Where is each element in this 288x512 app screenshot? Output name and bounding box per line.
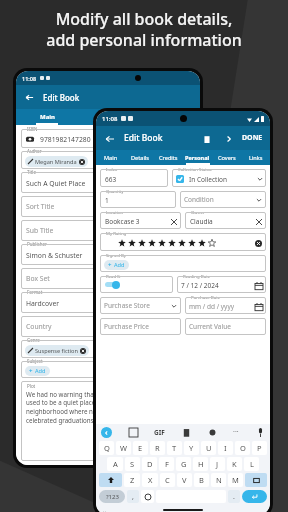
staticText: F	[165, 459, 169, 469]
button[interactable]: Title	[21, 172, 195, 193]
button[interactable]: V	[177, 473, 192, 487]
button[interactable]: W	[116, 441, 131, 455]
staticText: Index	[106, 166, 118, 172]
button[interactable]: Covers	[212, 150, 241, 165]
button[interactable]: Settings	[208, 428, 217, 437]
button[interactable]: Quantity	[100, 191, 176, 208]
button[interactable]: Location	[100, 212, 181, 229]
button[interactable]: Y	[184, 441, 199, 455]
staticText: Megan Miranda	[35, 158, 77, 166]
button[interactable]: My Rating	[100, 233, 266, 251]
button[interactable]: ⌄	[102, 507, 108, 512]
button[interactable]: S	[125, 457, 140, 471]
staticText: 9781982147280	[40, 135, 91, 144]
button[interactable]: D	[142, 457, 157, 471]
button[interactable]: Subject	[21, 361, 195, 378]
button[interactable]: Sub Title	[21, 220, 195, 241]
button[interactable]: O	[235, 441, 250, 455]
staticText: 1	[105, 196, 109, 205]
button[interactable]: ,	[127, 490, 139, 503]
staticText: S	[130, 459, 135, 469]
button[interactable]: Q	[99, 441, 114, 455]
button[interactable]: Delete	[200, 132, 213, 145]
button[interactable]: Format	[21, 292, 195, 313]
button[interactable]: .	[228, 490, 240, 503]
staticText: Box Set	[26, 274, 50, 283]
button[interactable]: Suspense fiction	[28, 345, 86, 356]
button[interactable]: Shift	[99, 473, 122, 487]
button[interactable]: Back	[23, 91, 35, 103]
button[interactable]: Personal	[183, 150, 212, 165]
button[interactable]: Index	[100, 169, 168, 187]
button[interactable]: Main	[96, 150, 125, 165]
button[interactable]: B	[194, 473, 209, 487]
button[interactable]: Enter	[242, 490, 267, 503]
button[interactable]: M	[228, 473, 243, 487]
button[interactable]: Credits	[154, 150, 183, 165]
button[interactable]: Backspace	[245, 473, 267, 487]
button[interactable]: Megan Miranda	[28, 156, 85, 167]
button[interactable]: L	[244, 457, 259, 471]
button[interactable]: G	[176, 457, 191, 471]
button[interactable]: Back	[103, 132, 116, 145]
button[interactable]: Cre	[139, 109, 200, 125]
staticText: U	[206, 443, 212, 453]
button[interactable]: Sort Title	[21, 196, 195, 217]
button[interactable]: Clipboard	[182, 428, 191, 437]
button[interactable]: Author	[21, 151, 195, 169]
button[interactable]: Purchase Date	[185, 297, 266, 314]
button[interactable]: A	[107, 457, 123, 471]
button[interactable]: Links	[241, 150, 270, 165]
button[interactable]: Purchase Store	[100, 297, 181, 314]
button[interactable]: Emoji	[141, 490, 154, 503]
button[interactable]: ISBN	[21, 129, 195, 148]
button[interactable]: +	[108, 260, 125, 270]
button[interactable]: Details	[125, 150, 154, 165]
button[interactable]: Condition	[180, 191, 266, 208]
button[interactable]: Publisher	[21, 244, 195, 265]
button[interactable]: Next	[222, 132, 235, 145]
button[interactable]: N	[211, 473, 226, 487]
button[interactable]: Reading Date	[177, 276, 266, 293]
button[interactable]: P	[252, 441, 267, 455]
button[interactable]: E	[133, 441, 148, 455]
button[interactable]: Purchase Price	[100, 318, 181, 335]
button[interactable]: +	[29, 366, 46, 376]
button[interactable]: GIF	[154, 428, 165, 437]
button[interactable]: F	[159, 457, 174, 471]
button[interactable]: X	[142, 473, 158, 487]
button[interactable]: Voice input	[256, 428, 265, 437]
button[interactable]: U	[201, 441, 216, 455]
button[interactable]: Details	[78, 109, 139, 125]
staticText: R	[155, 443, 160, 453]
button[interactable]: T	[167, 441, 182, 455]
button[interactable]: C	[160, 473, 175, 487]
button[interactable]: Collapse	[101, 427, 112, 438]
button[interactable]: ?123	[99, 490, 125, 503]
button[interactable]: More	[233, 427, 239, 437]
button[interactable]: J	[210, 457, 225, 471]
button[interactable]: DONE	[242, 133, 263, 143]
staticText: P	[257, 443, 262, 453]
button[interactable]: Main	[16, 109, 78, 125]
button[interactable]: Signed By	[100, 255, 266, 272]
button[interactable]: Read It	[100, 276, 173, 293]
button[interactable]: Collection Status	[172, 169, 266, 187]
staticText: Quantity	[106, 188, 124, 194]
button[interactable]: Box Set	[21, 268, 195, 289]
button[interactable]: Stickers	[129, 428, 138, 437]
button[interactable]: H	[193, 457, 208, 471]
button[interactable]: Genre	[21, 340, 195, 358]
button[interactable]: I	[218, 441, 233, 455]
staticText: G	[181, 459, 187, 469]
button[interactable]: Z	[124, 473, 140, 487]
staticText: Genre	[27, 337, 40, 343]
staticText: Bookcase 3	[105, 217, 140, 226]
button[interactable]: R	[150, 441, 165, 455]
button[interactable]: Current Value	[185, 318, 266, 335]
button[interactable]: K	[227, 457, 242, 471]
button[interactable]: Country	[21, 316, 195, 337]
button[interactable]: Owner	[185, 212, 266, 229]
